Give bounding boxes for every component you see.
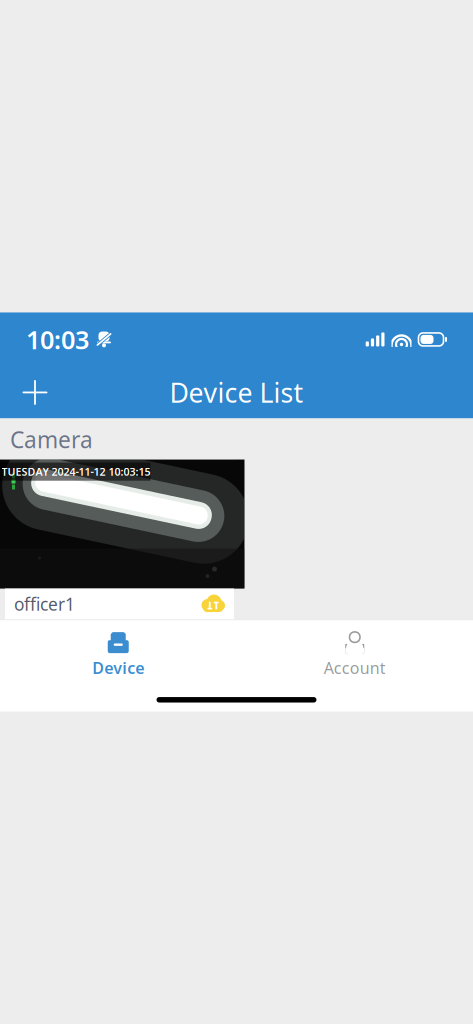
staticText: 10:03: [26, 323, 89, 356]
staticText: officer1: [14, 592, 75, 615]
staticText: Camera: [10, 424, 93, 454]
button[interactable]: TUESDAY 2024-11-12 10:03:15: [5, 460, 234, 620]
staticText: Account: [324, 657, 386, 678]
staticText: TUESDAY 2024-11-12 10:03:15: [1, 465, 150, 479]
staticText: Device: [92, 657, 144, 678]
button[interactable]: Account: [236, 626, 473, 684]
button[interactable]: Device: [0, 626, 236, 684]
staticText: Device List: [169, 375, 303, 410]
button[interactable]: Add device: [12, 370, 58, 414]
